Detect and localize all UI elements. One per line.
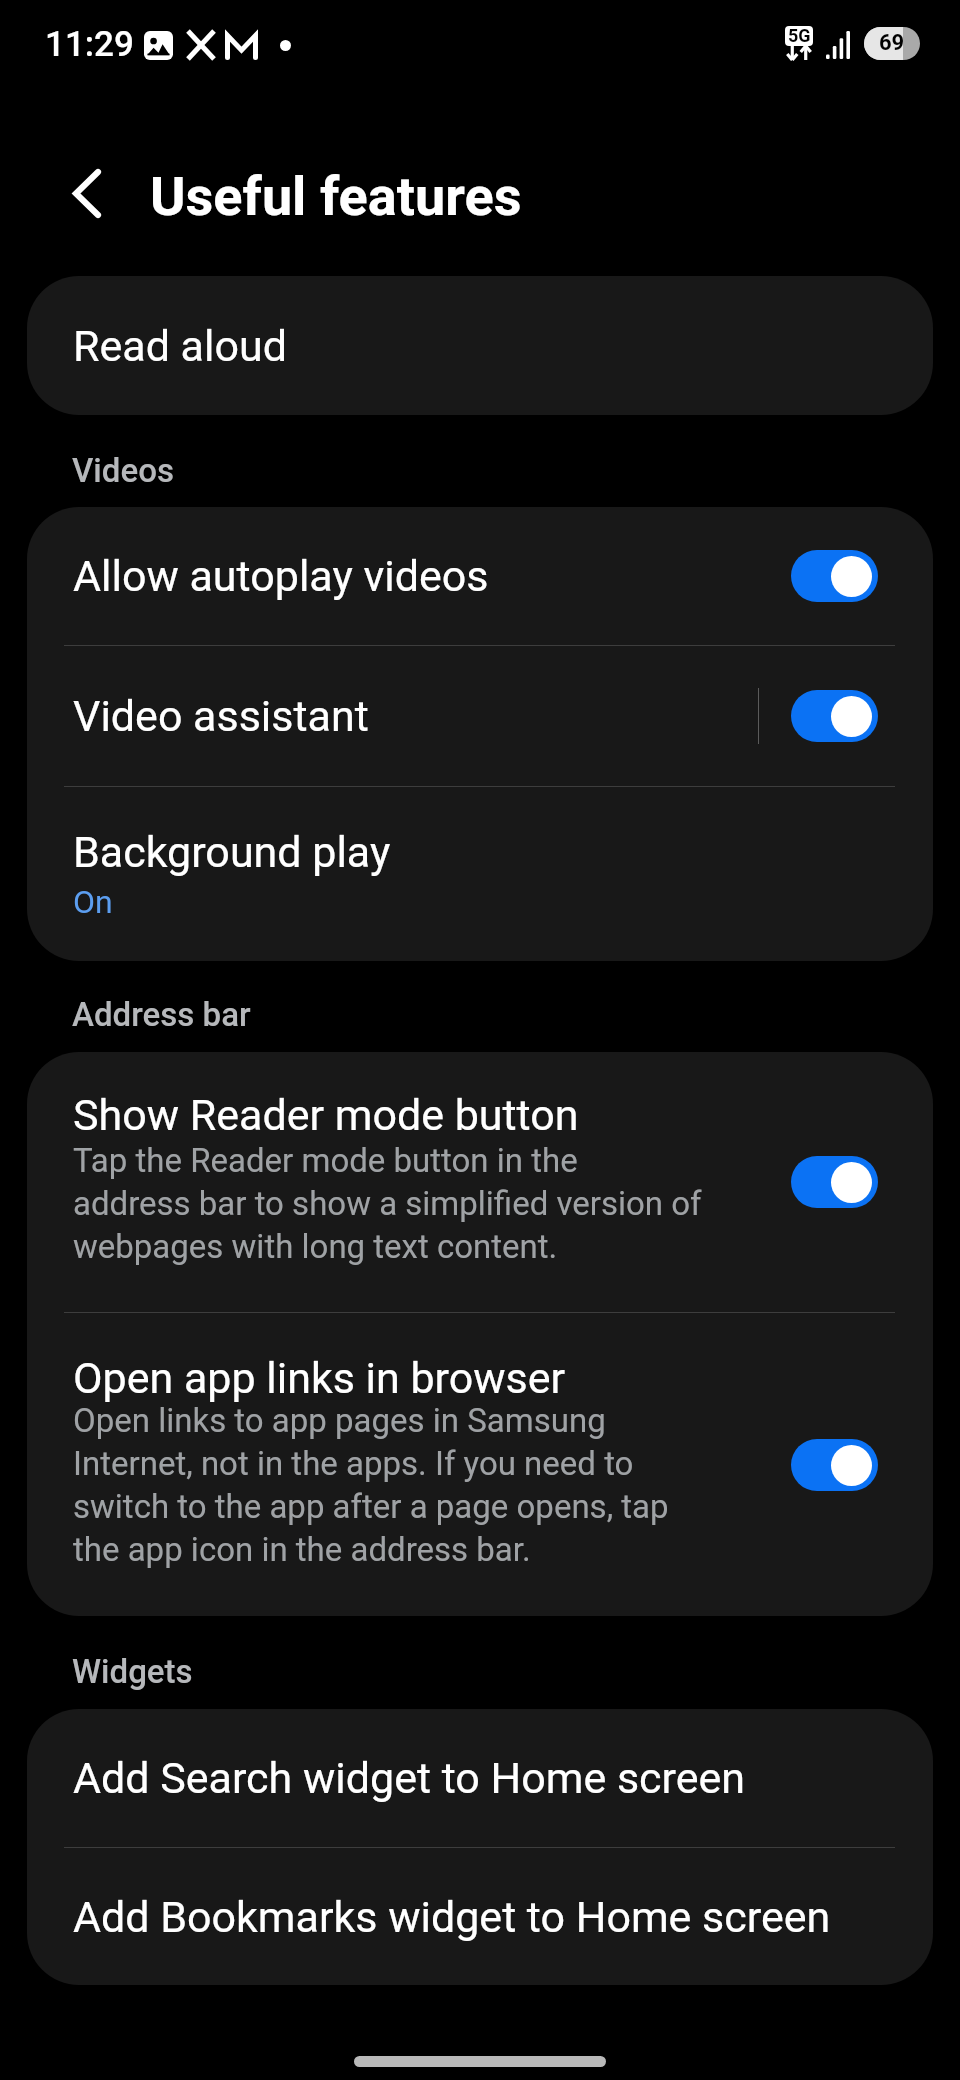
staticText: Open app links in browser [73,1353,566,1403]
staticText: Widgets [72,1652,193,1691]
button[interactable]: Show Reader mode button [27,1052,933,1312]
staticText: Read aloud [73,321,287,371]
staticText: Address bar [72,995,251,1034]
button[interactable]: Open app links in browser [27,1313,933,1616]
staticText: Open links to app pages in Samsung Inter… [73,1398,669,1570]
staticText: On [73,883,113,921]
button[interactable]: Allow autoplay videos [791,550,878,602]
button[interactable]: Show Reader mode button [791,1156,878,1208]
staticText: Tap the Reader mode button in the addres… [73,1138,702,1267]
staticText: 5G [788,26,811,45]
staticText: 69 [879,30,905,56]
button[interactable]: Background play [27,787,933,961]
button[interactable]: Video assistant [791,690,878,742]
button[interactable]: Add Search widget to Home screen [27,1709,933,1847]
staticText: Add Search widget to Home screen [73,1753,746,1803]
staticText: Show Reader mode button [73,1090,579,1140]
button[interactable]: Add Bookmarks widget to Home screen [27,1848,933,1985]
staticText: Add Bookmarks widget to Home screen [73,1892,831,1942]
staticText: Videos [72,451,174,490]
staticText: Useful features [150,165,522,228]
button[interactable]: Read aloud [27,276,933,415]
button[interactable]: Navigate up [56,162,118,224]
staticText: 11:29 [45,24,134,65]
button[interactable]: Allow autoplay videos [27,507,933,645]
button[interactable]: Video assistant [27,646,758,786]
staticText: Allow autoplay videos [73,551,791,601]
staticText: Background play [73,827,391,877]
staticText: Video assistant [73,691,369,741]
button[interactable]: Open app links in browser [791,1439,878,1491]
